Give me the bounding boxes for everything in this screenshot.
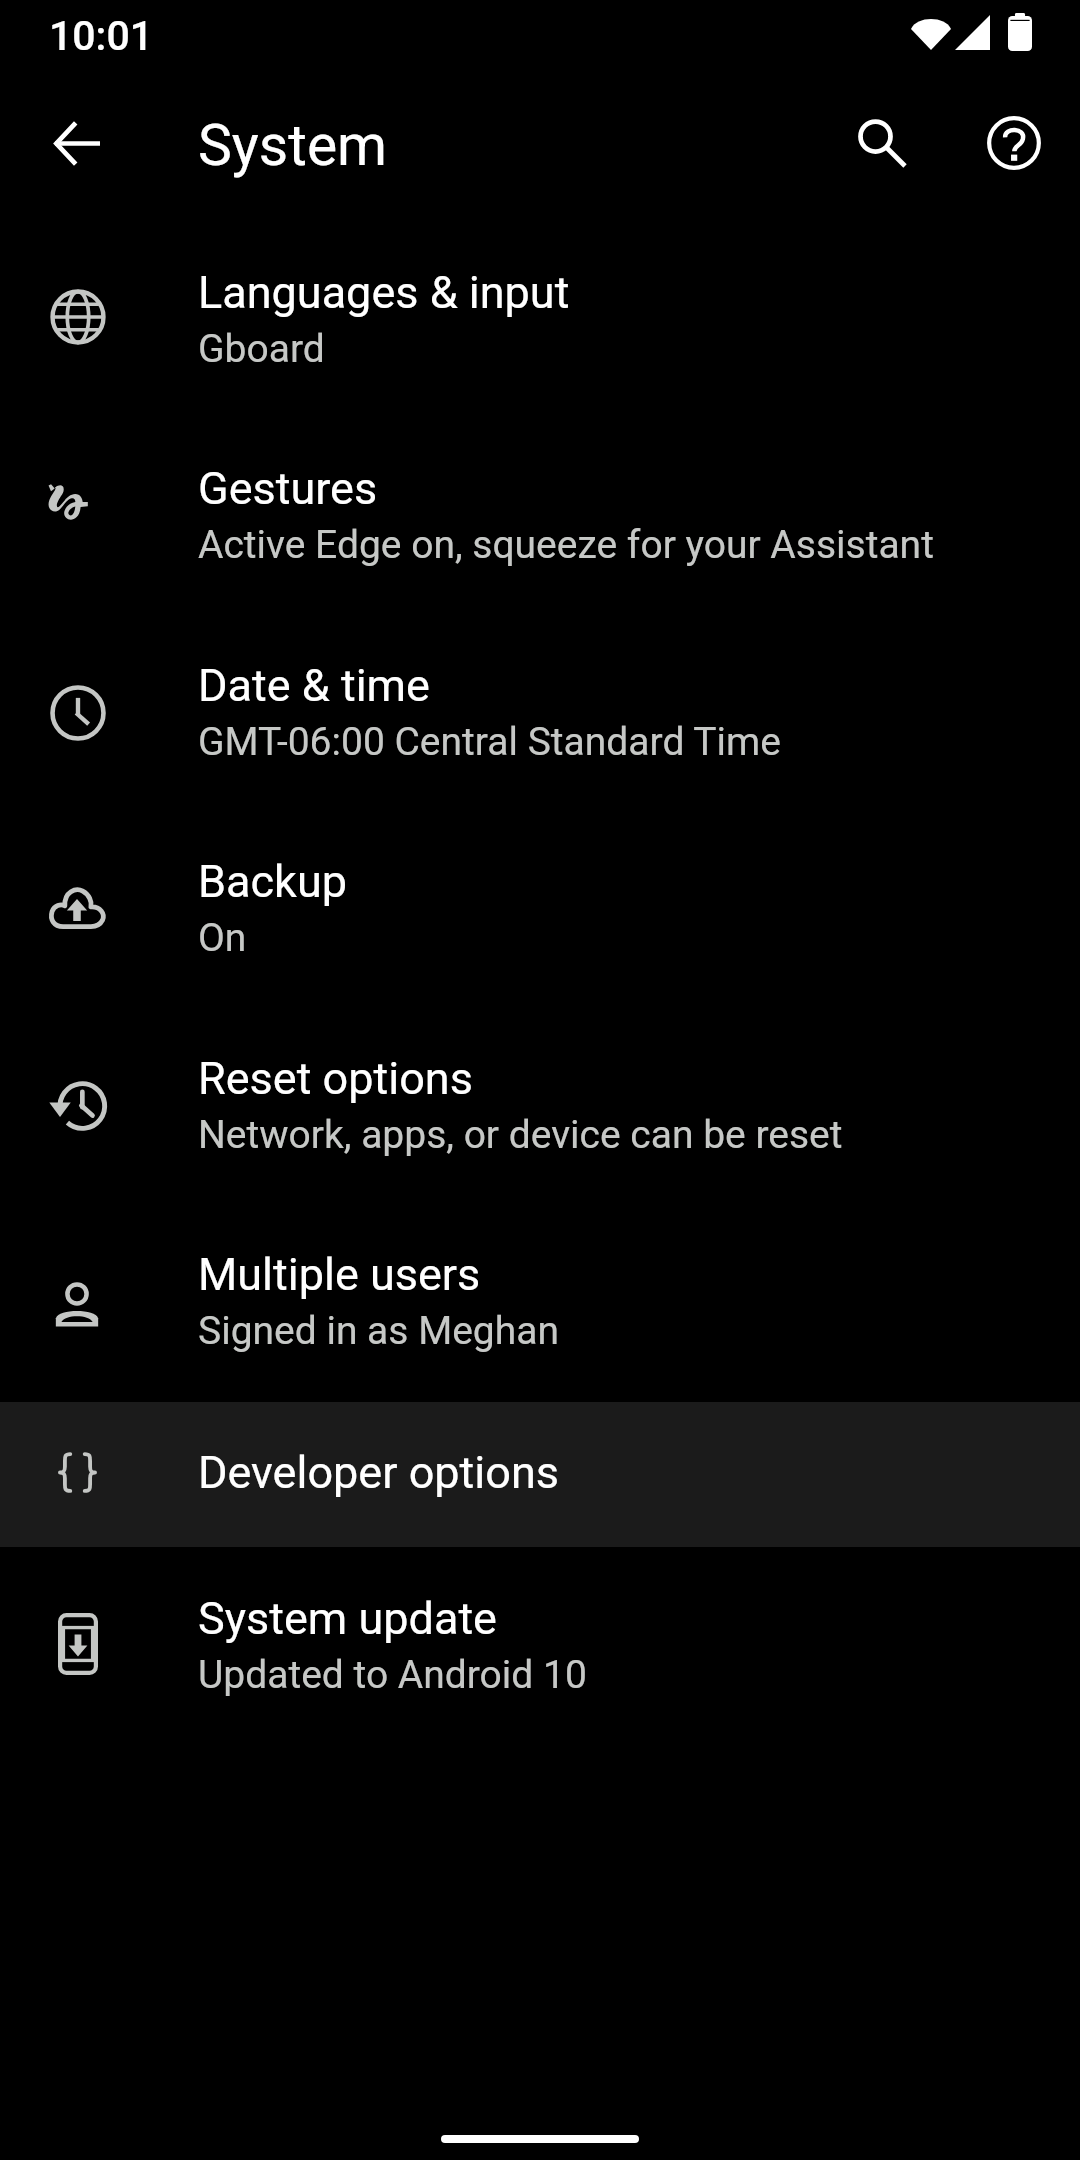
staticText: Network, apps, or device can be reset — [198, 1112, 843, 1158]
staticText: Gestures — [198, 462, 378, 515]
button[interactable]: System update — [0, 1547, 1080, 1743]
staticText: Active Edge on, squeeze for your Assista… — [198, 522, 934, 568]
button[interactable]: Multiple users — [0, 1206, 1080, 1402]
button[interactable]: Languages & input — [0, 226, 1080, 422]
staticText: System update — [198, 1592, 497, 1645]
staticText: Developer options — [198, 1446, 559, 1499]
staticText: On — [198, 915, 247, 961]
staticText: System — [198, 112, 388, 179]
staticText: Gboard — [198, 326, 325, 372]
button[interactable]: Gestures — [0, 422, 1080, 618]
button[interactable]: Reset options — [0, 1010, 1080, 1206]
button[interactable]: Date & time — [0, 618, 1080, 814]
staticText: Signed in as Meghan — [198, 1308, 559, 1354]
staticText: GMT-06:00 Central Standard Time — [198, 719, 781, 765]
button[interactable]: Search — [832, 93, 932, 193]
staticText: Date & time — [198, 659, 430, 712]
button[interactable]: Help — [964, 93, 1064, 193]
staticText: Reset options — [198, 1052, 473, 1105]
button[interactable]: Backup — [0, 814, 1080, 1010]
staticText: Languages & input — [198, 266, 570, 319]
button[interactable]: Back — [27, 93, 127, 193]
staticText: Updated to Android 10 — [198, 1652, 587, 1698]
staticText: Backup — [198, 855, 347, 908]
staticText: 10:01 — [49, 12, 154, 60]
staticText: Multiple users — [198, 1248, 481, 1301]
button[interactable]: Developer options — [0, 1402, 1080, 1547]
